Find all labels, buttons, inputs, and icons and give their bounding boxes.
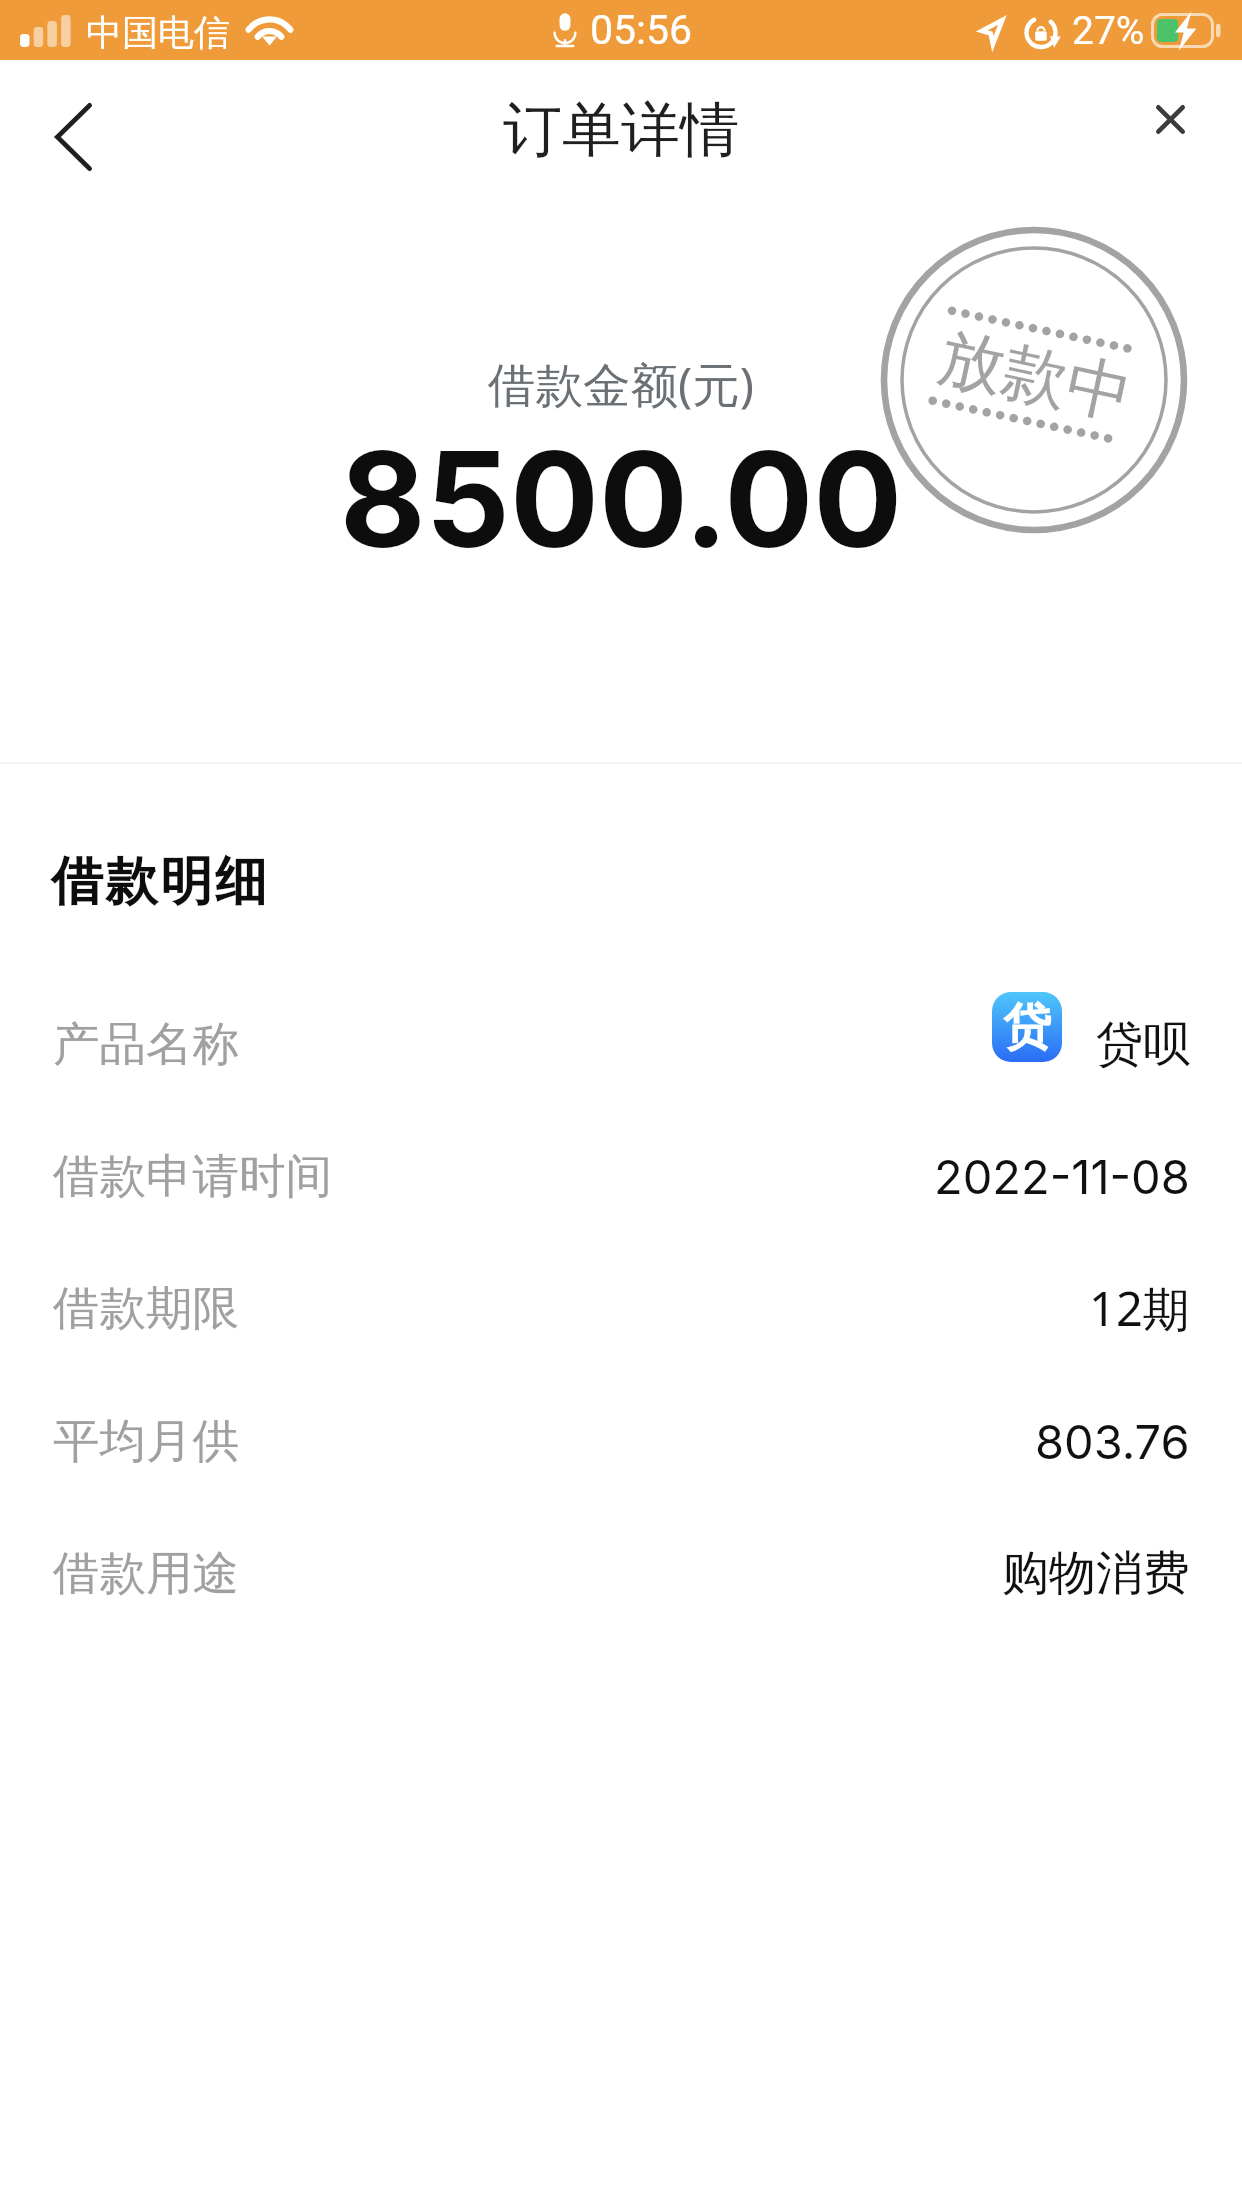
- staticText: 中国电信: [86, 10, 230, 55]
- button[interactable]: 产品名称: [0, 978, 1242, 1110]
- staticText: 产品名称: [53, 1015, 239, 1074]
- staticText: 借款金额(元): [0, 351, 1242, 416]
- staticText: 贷: [1003, 997, 1051, 1057]
- button[interactable]: 借款期限: [0, 1242, 1242, 1374]
- button[interactable]: 借款用途: [0, 1507, 1242, 1639]
- staticText: 贷呗: [1096, 1015, 1190, 1074]
- staticText: 订单详情: [503, 93, 739, 167]
- staticText: 借款申请时间: [53, 1147, 332, 1206]
- staticText: 803.76: [1035, 1413, 1190, 1470]
- staticText: 2022-11-08: [934, 1148, 1190, 1205]
- staticText: 借款明细: [51, 849, 270, 915]
- button[interactable]: Back: [17, 81, 129, 193]
- button[interactable]: Close: [1114, 63, 1226, 175]
- staticText: 12期: [1089, 1276, 1190, 1340]
- staticText: 27%: [1072, 8, 1145, 54]
- staticText: 放款中: [931, 316, 1139, 437]
- staticText: 05:56: [590, 6, 693, 54]
- staticText: 借款用途: [53, 1544, 239, 1603]
- staticText: 借款期限: [53, 1279, 239, 1338]
- staticText: 平均月供: [53, 1412, 239, 1471]
- staticText: 8500.00: [0, 419, 1242, 579]
- button[interactable]: 平均月供: [0, 1375, 1242, 1507]
- staticText: 购物消费: [1002, 1544, 1190, 1603]
- button[interactable]: 借款申请时间: [0, 1110, 1242, 1242]
